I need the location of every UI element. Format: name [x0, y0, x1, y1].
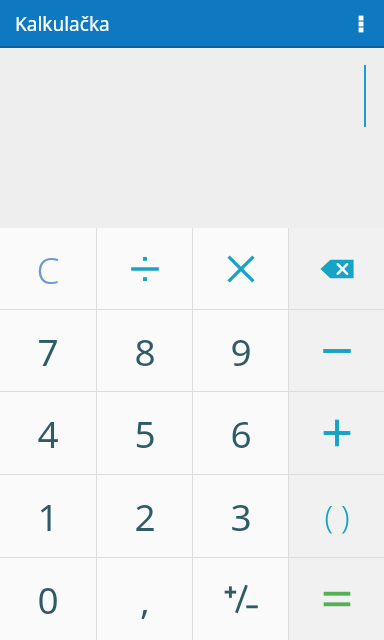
button[interactable]: Equals: [289, 558, 384, 640]
button[interactable]: ,: [97, 558, 192, 640]
button[interactable]: 9: [193, 310, 288, 391]
staticText: 4: [37, 408, 59, 458]
button[interactable]: 6: [193, 392, 288, 474]
staticText: 9: [230, 326, 252, 376]
button[interactable]: ( ): [289, 475, 384, 557]
button[interactable]: 0: [0, 558, 96, 640]
staticText: ,: [140, 574, 150, 624]
staticText: 8: [134, 326, 156, 376]
button[interactable]: 8: [97, 310, 192, 391]
staticText: 1: [37, 491, 59, 541]
button[interactable]: Multiply: [193, 228, 288, 309]
staticText: C: [36, 244, 60, 294]
staticText: 5: [134, 408, 156, 458]
staticText: ( ): [324, 495, 350, 537]
staticText: 2: [134, 491, 156, 541]
button[interactable]: 3: [193, 475, 288, 557]
button[interactable]: Plus: [289, 392, 384, 474]
button[interactable]: Minus: [289, 310, 384, 391]
button[interactable]: C: [0, 228, 96, 309]
button[interactable]: 1: [0, 475, 96, 557]
staticText: Kalkulačka: [15, 11, 110, 37]
button[interactable]: 5: [97, 392, 192, 474]
button[interactable]: 2: [97, 475, 192, 557]
staticText: 3: [230, 491, 252, 541]
button[interactable]: More options: [338, 1, 384, 47]
button[interactable]: Plus minus: [193, 558, 288, 640]
button[interactable]: 7: [0, 310, 96, 391]
staticText: 0: [37, 574, 59, 624]
staticText: 7: [37, 326, 59, 376]
button[interactable]: 4: [0, 392, 96, 474]
button[interactable]: Backspace: [289, 228, 384, 309]
staticText: 6: [230, 408, 252, 458]
button[interactable]: Divide: [97, 228, 192, 309]
